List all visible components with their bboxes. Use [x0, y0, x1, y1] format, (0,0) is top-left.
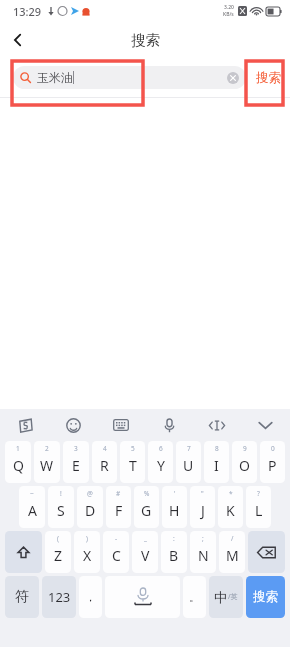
button[interactable]: * — [218, 486, 243, 528]
staticText: # — [116, 489, 121, 498]
staticText: 9 — [243, 444, 247, 453]
staticText: 搜索 — [256, 70, 281, 86]
button[interactable]: " — [190, 486, 215, 528]
staticText: 123 — [48, 588, 71, 606]
staticText: S — [57, 501, 65, 520]
button[interactable]: 1 — [5, 441, 31, 483]
staticText: 符 — [15, 588, 29, 606]
staticText: @ — [87, 489, 93, 498]
button[interactable]: 搜索 — [246, 58, 290, 97]
staticText: L — [255, 501, 263, 520]
staticText: F — [115, 501, 123, 520]
staticText: O — [239, 456, 250, 475]
staticText: X — [83, 546, 92, 565]
staticText: 玉米油 — [37, 70, 73, 85]
button[interactable]: 9 — [232, 441, 257, 483]
staticText: : — [173, 534, 175, 543]
staticText: U — [183, 456, 194, 475]
button[interactable]: ! — [48, 486, 74, 528]
staticText: 搜索 — [253, 589, 278, 605]
button[interactable]: ? — [246, 486, 271, 528]
staticText: ' — [174, 489, 176, 498]
button[interactable]: Emoji — [60, 412, 86, 438]
button[interactable]: 符 — [5, 576, 39, 618]
button[interactable]: % — [134, 486, 159, 528]
staticText: 7 — [187, 444, 191, 453]
staticText: 0 — [271, 444, 275, 453]
staticText: ( — [57, 534, 59, 543]
staticText: % — [144, 489, 150, 498]
staticText: Z — [54, 546, 63, 565]
staticText: - — [115, 534, 118, 543]
button[interactable]: 6 — [148, 441, 173, 483]
staticText: 3 — [74, 444, 78, 453]
button[interactable]: ~ — [19, 486, 45, 528]
staticText: 3.20 — [224, 4, 234, 11]
staticText: C — [112, 546, 121, 565]
button[interactable]: ' — [162, 486, 187, 528]
button[interactable]: 2 — [34, 441, 60, 483]
staticText: J — [201, 501, 205, 520]
button[interactable]: Shift — [5, 531, 42, 573]
button[interactable]: Cursor control — [204, 412, 230, 438]
staticText: 。 — [189, 590, 200, 604]
staticText: E — [72, 456, 80, 475]
staticText: ) — [86, 534, 88, 543]
staticText: M — [226, 546, 239, 565]
staticText: Q — [13, 456, 24, 475]
button[interactable]: / — [219, 531, 245, 573]
staticText: T — [129, 456, 137, 475]
staticText: 2 — [45, 444, 49, 453]
staticText: G — [141, 501, 152, 520]
button[interactable]: # — [106, 486, 131, 528]
button[interactable]: Clear — [227, 72, 239, 84]
button[interactable]: @ — [77, 486, 103, 528]
button[interactable]: ( — [45, 531, 71, 573]
staticText: P — [268, 456, 277, 475]
staticText: Y — [157, 456, 165, 475]
button[interactable]: 4 — [92, 441, 117, 483]
staticText: ! — [60, 489, 62, 498]
button[interactable]: 8 — [204, 441, 229, 483]
button[interactable]: 0 — [260, 441, 285, 483]
staticText: * — [229, 489, 233, 498]
button[interactable]: 3 — [63, 441, 89, 483]
staticText: W — [40, 456, 54, 475]
button[interactable]: : — [161, 531, 187, 573]
staticText: 搜索 — [131, 31, 160, 49]
button[interactable]: Comma — [79, 576, 102, 618]
staticText: 5 — [131, 444, 135, 453]
button[interactable]: Sogou input — [12, 412, 38, 438]
staticText: V — [141, 546, 150, 565]
button[interactable]: _ — [132, 531, 158, 573]
button[interactable]: Period — [183, 576, 206, 618]
button[interactable]: ) — [74, 531, 100, 573]
button[interactable]: - — [103, 531, 129, 573]
staticText: ~ — [30, 489, 34, 498]
staticText: H — [169, 501, 180, 520]
staticText: " — [201, 489, 204, 498]
button[interactable]: Hide keyboard — [252, 412, 278, 438]
staticText: A — [28, 501, 37, 520]
staticText: 1 — [16, 444, 20, 453]
staticText: D — [85, 501, 96, 520]
staticText: N — [198, 546, 209, 565]
button[interactable]: Backspace — [248, 531, 285, 573]
staticText: B — [169, 546, 179, 565]
staticText: _ — [144, 534, 147, 543]
button[interactable]: 123 — [42, 576, 76, 618]
button[interactable]: Voice input — [156, 412, 182, 438]
staticText: R — [100, 456, 109, 475]
button[interactable]: ; — [190, 531, 216, 573]
button[interactable]: 5 — [120, 441, 145, 483]
button[interactable]: Back — [0, 22, 36, 58]
button[interactable]: 玉米油 — [13, 66, 246, 89]
button[interactable]: Space — [105, 576, 180, 618]
staticText: / — [231, 534, 234, 543]
staticText: 4 — [103, 444, 107, 453]
staticText: 6 — [159, 444, 163, 453]
button[interactable]: 7 — [176, 441, 201, 483]
button[interactable]: Keyboard layout — [108, 412, 134, 438]
button[interactable]: 中 — [209, 576, 243, 618]
button[interactable]: 搜索 — [246, 576, 285, 618]
